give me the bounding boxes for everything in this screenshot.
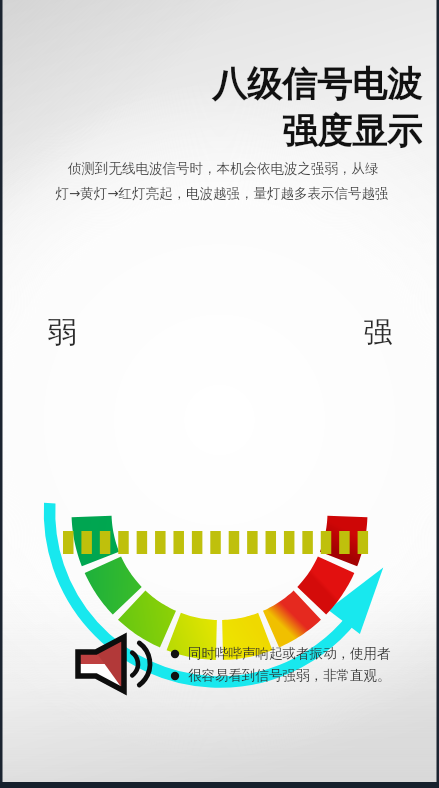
button[interactable]: 八级信号电波强度显示 (0, 0, 439, 788)
